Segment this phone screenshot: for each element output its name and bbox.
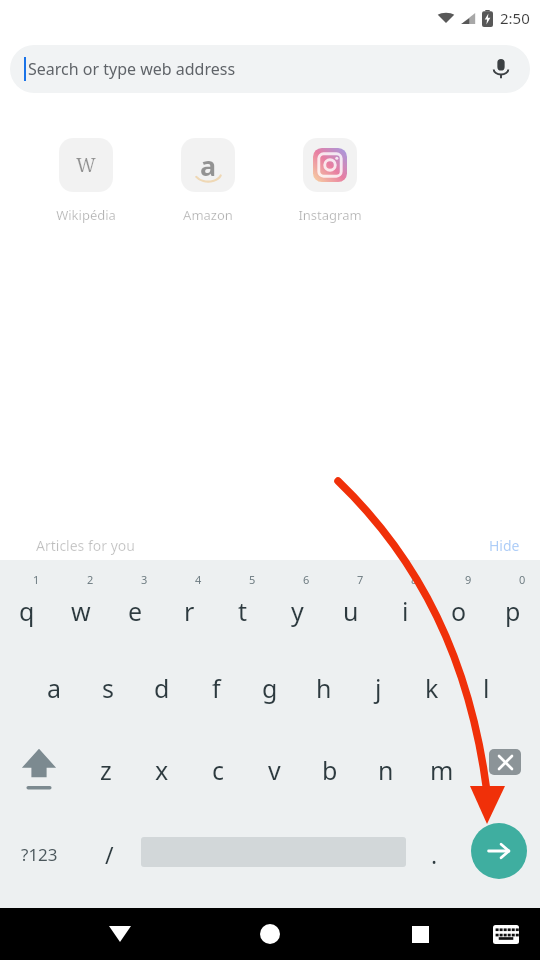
button[interactable]: j: [351, 652, 405, 724]
button[interactable]: z: [78, 734, 134, 806]
button[interactable]: Switch keyboard: [486, 914, 526, 954]
button[interactable]: 4: [162, 570, 216, 642]
staticText: W: [76, 152, 96, 178]
staticText: b: [322, 753, 338, 787]
staticText: 5: [249, 572, 256, 587]
button[interactable]: ?123: [8, 816, 70, 892]
button[interactable]: x: [134, 734, 190, 806]
staticText: 1: [33, 572, 40, 587]
button[interactable]: Hide: [489, 536, 520, 555]
staticText: d: [154, 671, 170, 705]
staticText: Wikipédia: [56, 206, 116, 224]
button[interactable]: W: [25, 138, 147, 224]
staticText: ?123: [21, 843, 58, 866]
button[interactable]: Search or type web address: [10, 45, 530, 93]
button[interactable]: g: [243, 652, 297, 724]
staticText: 4: [195, 572, 202, 587]
staticText: Hide: [489, 536, 520, 555]
staticText: t: [238, 594, 248, 628]
button[interactable]: k: [405, 652, 459, 724]
staticText: Amazon: [183, 206, 233, 224]
staticText: Search or type web address: [28, 58, 236, 80]
button[interactable]: 1: [0, 570, 54, 642]
staticText: g: [262, 671, 278, 705]
staticText: a: [47, 671, 62, 705]
staticText: a: [200, 147, 217, 184]
staticText: c: [212, 753, 225, 787]
button[interactable]: 2: [54, 570, 108, 642]
staticText: o: [451, 594, 467, 628]
staticText: 9: [465, 572, 472, 587]
button[interactable]: Shift: [0, 734, 78, 806]
button[interactable]: 6: [270, 570, 324, 642]
staticText: 3: [141, 572, 148, 587]
staticText: 6: [303, 572, 310, 587]
staticText: w: [71, 594, 91, 628]
staticText: k: [425, 671, 439, 705]
staticText: 7: [357, 572, 364, 587]
button[interactable]: s: [81, 652, 135, 724]
staticText: h: [316, 671, 332, 705]
button[interactable]: h: [297, 652, 351, 724]
button[interactable]: 5: [216, 570, 270, 642]
button[interactable]: Enter: [471, 823, 527, 879]
staticText: l: [483, 671, 490, 705]
button[interactable]: a: [147, 138, 269, 224]
staticText: 2:50: [500, 8, 530, 28]
staticText: .: [431, 839, 438, 870]
staticText: j: [375, 671, 382, 705]
button[interactable]: Home: [246, 910, 294, 958]
button[interactable]: .: [416, 829, 452, 879]
staticText: Instagram: [298, 206, 362, 224]
button[interactable]: a: [27, 652, 81, 724]
staticText: Articles for you: [36, 536, 135, 555]
button[interactable]: 7: [324, 570, 378, 642]
button[interactable]: Instagram: [269, 138, 391, 224]
button[interactable]: 9: [432, 570, 486, 642]
button[interactable]: c: [190, 734, 246, 806]
staticText: r: [184, 594, 195, 628]
button[interactable]: 3: [108, 570, 162, 642]
button[interactable]: 0: [486, 570, 540, 642]
button[interactable]: b: [302, 734, 358, 806]
staticText: s: [102, 671, 114, 705]
staticText: f: [212, 671, 221, 705]
button[interactable]: f: [189, 652, 243, 724]
button[interactable]: /: [92, 829, 126, 879]
staticText: i: [402, 594, 409, 628]
button[interactable]: 8: [378, 570, 432, 642]
staticText: n: [378, 753, 394, 787]
staticText: 8: [411, 572, 418, 587]
staticText: e: [128, 594, 143, 628]
button[interactable]: Voice search: [488, 56, 514, 82]
staticText: 2: [87, 572, 94, 587]
staticText: x: [155, 753, 169, 787]
button[interactable]: Recent apps: [396, 910, 444, 958]
staticText: z: [100, 753, 112, 787]
staticText: u: [343, 594, 359, 628]
button[interactable]: n: [358, 734, 414, 806]
staticText: 0: [519, 572, 526, 587]
button[interactable]: m: [414, 734, 470, 806]
button[interactable]: Backspace: [470, 734, 540, 806]
button[interactable]: Back: [96, 910, 144, 958]
staticText: p: [505, 594, 521, 628]
button[interactable]: d: [135, 652, 189, 724]
staticText: v: [268, 753, 281, 787]
staticText: /: [105, 839, 114, 870]
staticText: q: [19, 594, 35, 628]
staticText: m: [430, 753, 454, 787]
button[interactable]: v: [246, 734, 302, 806]
button[interactable]: l: [459, 652, 513, 724]
staticText: y: [291, 594, 304, 628]
